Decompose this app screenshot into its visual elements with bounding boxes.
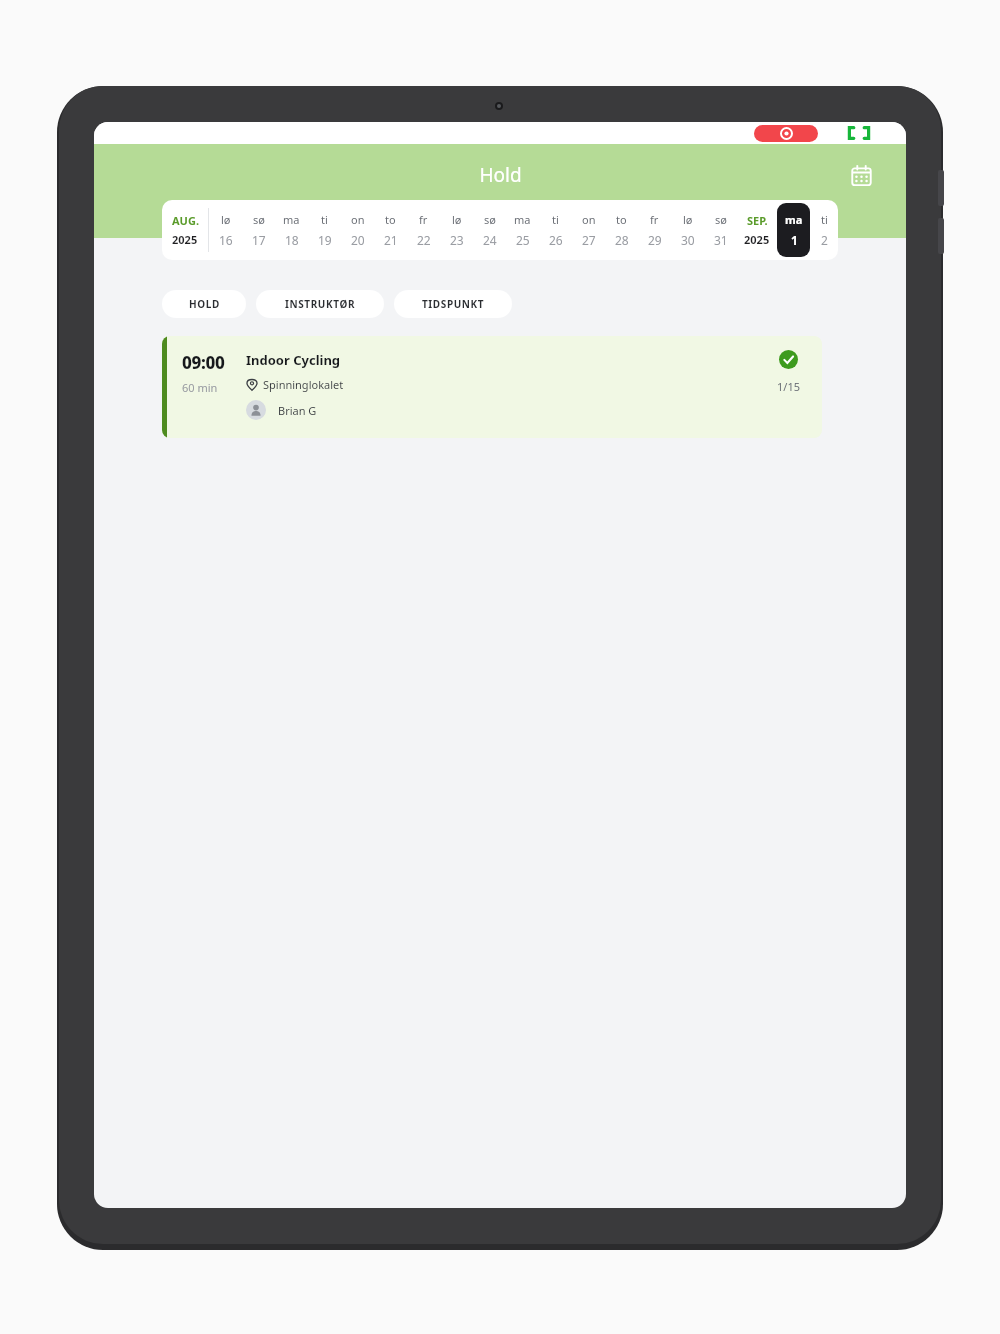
staticText: ti [321, 212, 328, 227]
staticText: Brian G [278, 403, 317, 418]
staticText: ti [552, 212, 559, 227]
button[interactable]: ti [810, 200, 838, 260]
button[interactable]: lø [209, 200, 242, 260]
staticText: lø [452, 212, 462, 227]
button[interactable]: ti [308, 200, 341, 260]
staticText: on [582, 212, 596, 227]
staticText: sø [484, 212, 496, 227]
staticText: sø [715, 212, 727, 227]
staticText: 2025 [744, 232, 770, 247]
button[interactable]: ma [275, 200, 308, 260]
staticText: 16 [219, 232, 233, 248]
button[interactable]: 09:00 [162, 336, 822, 438]
button[interactable]: fr [407, 200, 440, 260]
staticText: INSTRUKTØR [285, 297, 356, 311]
button[interactable]: ti [539, 200, 572, 260]
staticText: sø [253, 212, 265, 227]
button[interactable]: fr [638, 200, 671, 260]
button[interactable]: to [374, 200, 407, 260]
staticText: 18 [285, 232, 299, 248]
staticText: 22 [417, 232, 431, 248]
staticText: fr [419, 212, 428, 227]
button[interactable]: ma [506, 200, 539, 260]
staticText: SEP. [747, 213, 768, 228]
staticText: 21 [384, 232, 398, 248]
staticText: 29 [648, 232, 662, 248]
button[interactable]: sø [242, 200, 275, 260]
button[interactable]: INSTRUKTØR [256, 290, 384, 318]
staticText: ma [514, 212, 531, 227]
button[interactable]: on [341, 200, 374, 260]
staticText: 30 [681, 232, 695, 248]
staticText: 25 [516, 232, 530, 248]
staticText: HOLD [189, 297, 220, 311]
staticText: 27 [582, 232, 596, 248]
staticText: Hold [479, 162, 522, 188]
staticText: lø [221, 212, 231, 227]
staticText: 09:00 [182, 351, 225, 374]
staticText: to [385, 212, 396, 227]
staticText: ti [821, 212, 828, 227]
staticText: 1/15 [777, 379, 800, 394]
staticText: 19 [318, 232, 332, 248]
staticText: Spinninglokalet [263, 377, 344, 392]
button[interactable]: lø [440, 200, 473, 260]
staticText: 2025 [172, 232, 198, 247]
staticText: on [351, 212, 365, 227]
button[interactable]: TIDSPUNKT [394, 290, 512, 318]
button[interactable]: ma [777, 203, 810, 257]
staticText: 17 [252, 232, 266, 248]
staticText: to [616, 212, 627, 227]
button[interactable]: lø [671, 200, 704, 260]
staticText: 24 [483, 232, 497, 248]
button[interactable]: on [572, 200, 605, 260]
button[interactable]: Åbn kalender [844, 158, 878, 192]
button[interactable]: to [605, 200, 638, 260]
staticText: 2 [821, 232, 828, 248]
staticText: lø [683, 212, 693, 227]
button[interactable]: HOLD [162, 290, 246, 318]
staticText: fr [650, 212, 659, 227]
staticText: 31 [714, 232, 728, 248]
button[interactable]: sø [473, 200, 506, 260]
staticText: Indoor Cycling [246, 351, 341, 369]
staticText: ma [283, 212, 300, 227]
staticText: 26 [549, 232, 563, 248]
staticText: 23 [450, 232, 464, 248]
staticText: 60 min [182, 380, 218, 395]
staticText: ma [785, 212, 803, 227]
staticText: TIDSPUNKT [422, 297, 485, 311]
staticText: 1 [791, 232, 798, 248]
button[interactable]: sø [704, 200, 737, 260]
staticText: 28 [615, 232, 629, 248]
staticText: AUG. [172, 213, 199, 228]
staticText: 20 [351, 232, 365, 248]
